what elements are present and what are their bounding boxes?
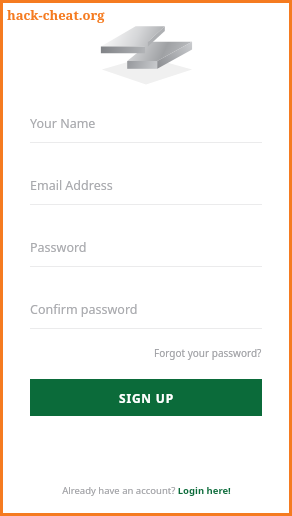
staticText: Email Address: [30, 177, 113, 194]
staticText: hack-cheat.org: [7, 6, 105, 24]
button[interactable]: Your Name: [30, 115, 262, 143]
other: App logo: [99, 25, 193, 85]
staticText: Confirm password: [30, 301, 138, 318]
button[interactable]: Forgot your password?: [154, 346, 262, 360]
button[interactable]: Password: [30, 239, 262, 267]
staticText: SIGN UP: [119, 390, 174, 406]
button[interactable]: Confirm password: [30, 301, 262, 329]
button[interactable]: Email Address: [30, 177, 262, 205]
staticText: Your Name: [30, 115, 96, 132]
button[interactable]: SIGN UP: [30, 379, 262, 416]
button[interactable]: Already have an account? Login here!: [62, 484, 231, 497]
staticText: Password: [30, 239, 87, 256]
